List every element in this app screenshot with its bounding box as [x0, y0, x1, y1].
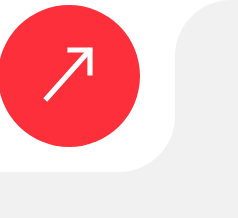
- button[interactable]: Open: [0, 0, 238, 218]
